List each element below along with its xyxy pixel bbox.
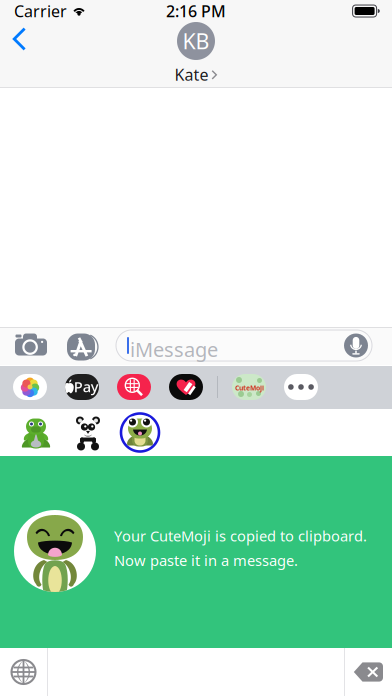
button[interactable]: Camera bbox=[9, 327, 53, 362]
staticText: 2:16 PM bbox=[166, 0, 226, 22]
button[interactable]: Frog face sticker, selected bbox=[114, 409, 166, 456]
button[interactable]: Image search bbox=[108, 366, 160, 408]
button[interactable]: More apps bbox=[275, 366, 327, 408]
button[interactable]: Frog sticker bbox=[10, 409, 62, 456]
staticText: CuteMoji bbox=[235, 383, 264, 392]
button[interactable]: Digital Touch bbox=[160, 366, 212, 408]
staticText: KB bbox=[182, 27, 209, 55]
button[interactable]: Next keyboard bbox=[0, 648, 47, 696]
button[interactable]: Back bbox=[1, 19, 37, 59]
button[interactable]: CuteMoji bbox=[223, 366, 275, 408]
staticText: iMessage bbox=[130, 336, 218, 363]
button[interactable]: Delete bbox=[345, 648, 392, 696]
button[interactable]: Panda sticker bbox=[62, 409, 114, 456]
staticText: Carrier bbox=[14, 0, 67, 22]
button[interactable]: KB bbox=[141, 22, 251, 85]
button[interactable]: App Store bbox=[61, 327, 105, 367]
staticText: Kate bbox=[174, 64, 208, 85]
button[interactable]: Dictate bbox=[344, 333, 368, 357]
staticText: Pay bbox=[74, 377, 99, 396]
button[interactable]: Photos bbox=[4, 366, 56, 408]
staticText: Your CuteMoji is copied to clipboard. bbox=[114, 526, 367, 545]
staticText: Now paste it in a message. bbox=[114, 550, 298, 570]
button[interactable]: Apple Pay bbox=[56, 366, 108, 408]
